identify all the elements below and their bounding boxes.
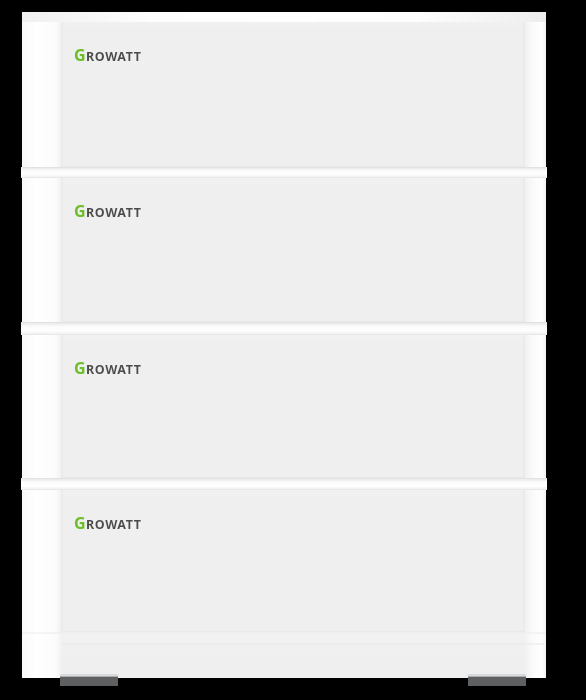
staticText: G bbox=[74, 512, 86, 534]
staticText: ROWATT bbox=[86, 361, 142, 378]
button[interactable]: Growatt stacked battery cabinet bbox=[0, 0, 586, 700]
staticText: G bbox=[74, 44, 86, 66]
other: Growatt logo bbox=[74, 357, 142, 379]
staticText: ROWATT bbox=[86, 48, 142, 65]
staticText: G bbox=[74, 357, 86, 379]
staticText: ROWATT bbox=[86, 204, 142, 221]
other: Growatt logo bbox=[74, 200, 142, 222]
staticText: G bbox=[74, 200, 86, 222]
other: Growatt logo bbox=[74, 44, 142, 66]
other: Growatt logo bbox=[74, 512, 142, 534]
staticText: ROWATT bbox=[86, 516, 142, 533]
